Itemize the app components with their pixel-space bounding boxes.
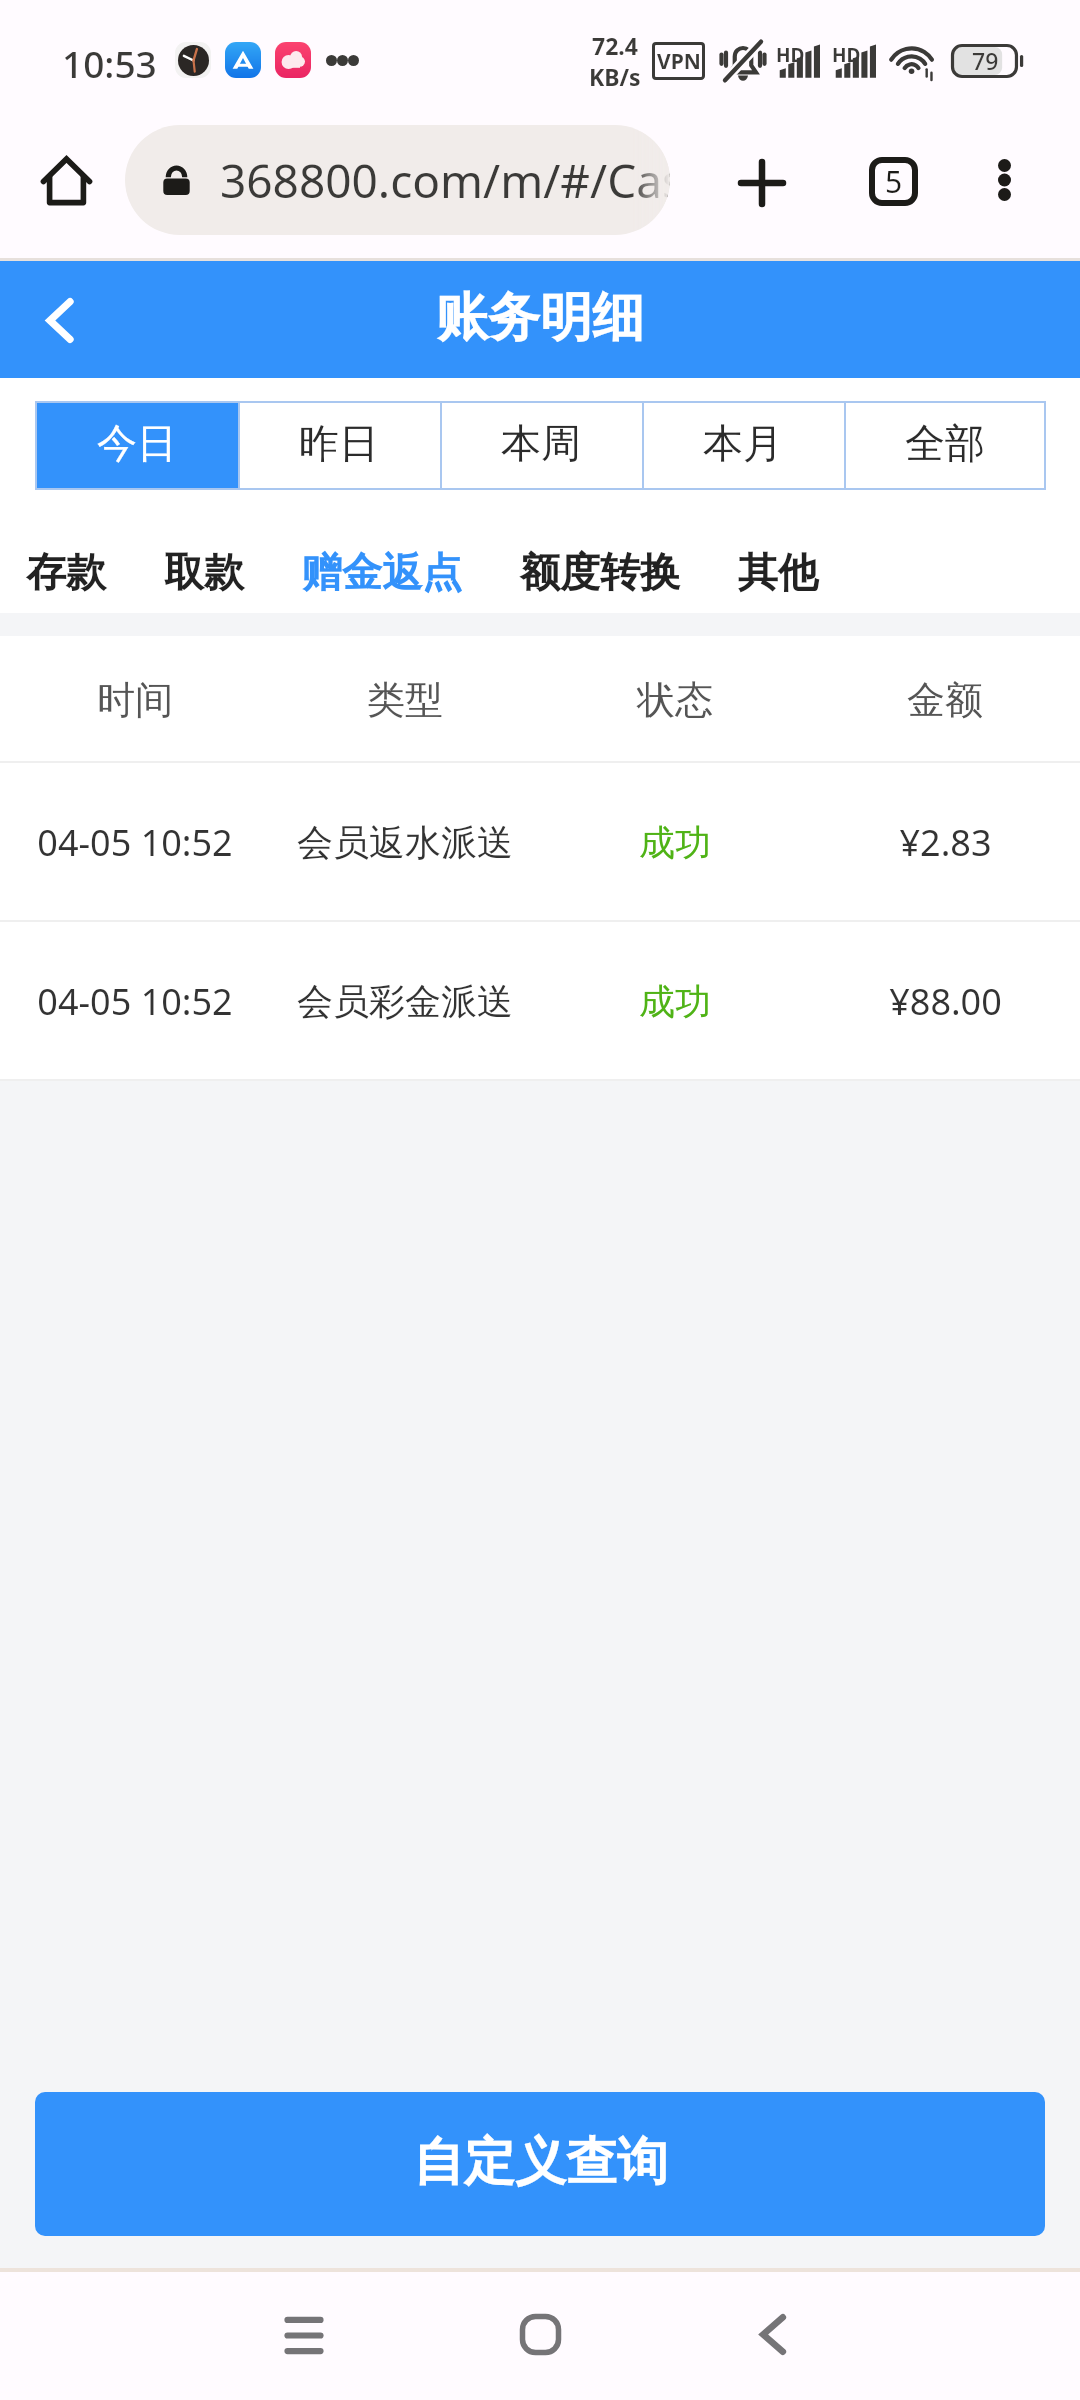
staticText: 成功	[639, 979, 711, 1024]
staticText: 10:53	[62, 38, 157, 88]
button[interactable]: 全部	[844, 401, 1046, 490]
button[interactable]: Back	[8, 268, 112, 372]
staticText: 368800.com/m/#/Cas	[220, 149, 670, 212]
button[interactable]: 存款	[0, 535, 135, 609]
button[interactable]: 本月	[642, 401, 844, 490]
button[interactable]: Back	[713, 2274, 833, 2394]
staticText: ¥2.83	[899, 818, 992, 867]
staticText: 会员返水派送	[297, 820, 513, 865]
staticText: 金额	[907, 676, 983, 724]
staticText: 账务明细	[436, 285, 644, 351]
staticText: 额度转换	[520, 547, 680, 597]
button[interactable]: Recent apps	[244, 2275, 364, 2395]
staticText: 状态	[637, 676, 713, 724]
button[interactable]: 04-05 10:52	[0, 922, 1080, 1081]
staticText: 本周	[501, 418, 581, 468]
staticText: 成功	[639, 820, 711, 865]
button[interactable]: 368800.com/m/#/Cas	[125, 125, 670, 235]
staticText: 其他	[738, 547, 818, 597]
button[interactable]: Home	[25, 140, 107, 222]
staticText: 全部	[905, 418, 985, 468]
button[interactable]: 取款	[135, 535, 273, 609]
staticText: 04-05 10:52	[37, 977, 233, 1026]
staticText: HD	[776, 42, 805, 68]
button[interactable]: 自定义查询	[35, 2092, 1045, 2236]
staticText: 类型	[367, 676, 443, 724]
staticText: 会员彩金派送	[297, 979, 513, 1024]
button[interactable]: More options	[954, 130, 1054, 230]
button[interactable]: 04-05 10:52	[0, 763, 1080, 922]
staticText: 72.4	[592, 30, 638, 61]
staticText: 赠金返点	[302, 547, 462, 597]
button[interactable]: Tabs	[843, 131, 943, 231]
staticText: HD	[832, 42, 861, 68]
staticText: 昨日	[299, 418, 379, 468]
staticText: 取款	[164, 547, 244, 597]
button[interactable]: 昨日	[238, 401, 440, 490]
button[interactable]: 今日	[35, 401, 238, 490]
button[interactable]: 其他	[709, 535, 847, 609]
staticText: 自定义查询	[413, 2130, 668, 2194]
staticText: 04-05 10:52	[37, 818, 233, 867]
staticText: VPN	[657, 47, 701, 76]
button[interactable]: Home	[480, 2274, 600, 2394]
button[interactable]: 赠金返点	[273, 535, 491, 609]
staticText: ¥88.00	[889, 977, 1002, 1026]
staticText: 时间	[97, 676, 173, 724]
button[interactable]: New tab	[712, 133, 812, 233]
staticText: 本月	[703, 418, 783, 468]
staticText: KB/s	[589, 61, 641, 92]
staticText: 存款	[26, 547, 106, 597]
staticText: 今日	[97, 418, 177, 468]
button[interactable]: 额度转换	[491, 535, 709, 609]
staticText: 5	[885, 161, 903, 202]
staticText: 79	[972, 45, 999, 76]
button[interactable]: 本周	[440, 401, 642, 490]
